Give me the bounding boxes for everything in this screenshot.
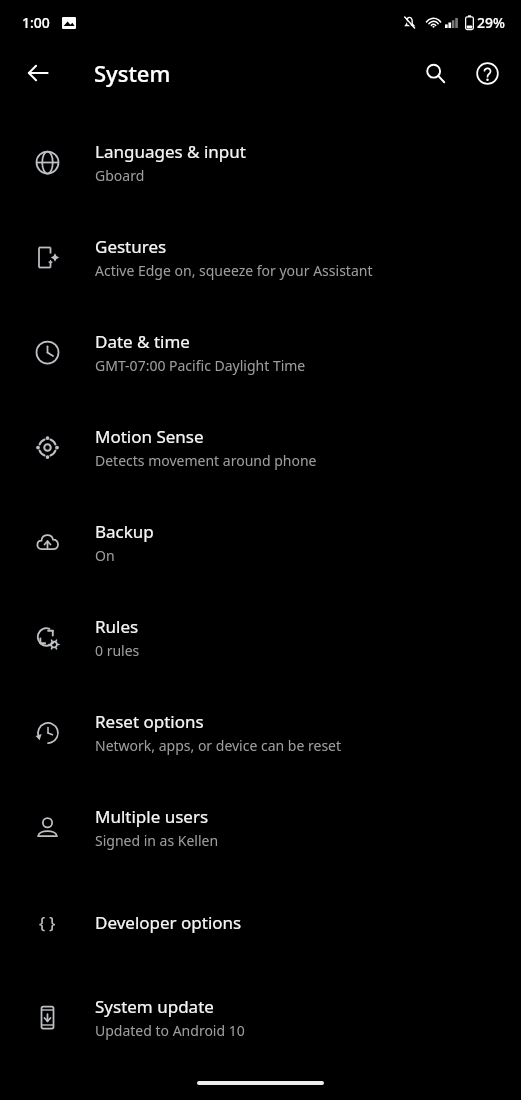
button[interactable]: Date & time: [0, 305, 521, 400]
staticText: Signed in as Kellen: [95, 831, 219, 850]
button[interactable]: Back: [10, 45, 66, 101]
staticText: System update: [95, 995, 214, 1018]
button[interactable]: Search: [409, 47, 461, 99]
staticText: On: [95, 546, 115, 565]
staticText: Updated to Android 10: [95, 1021, 245, 1040]
button[interactable]: { }: [0, 875, 521, 970]
staticText: Multiple users: [95, 805, 209, 828]
button[interactable]: Rules: [0, 590, 521, 685]
staticText: Developer options: [95, 911, 242, 934]
staticText: Gestures: [95, 235, 167, 258]
button[interactable]: Help: [461, 47, 513, 99]
staticText: 29%: [477, 13, 505, 32]
button[interactable]: Languages & input: [0, 115, 521, 210]
staticText: Gboard: [95, 166, 145, 185]
staticText: 1:00: [22, 13, 50, 32]
staticText: Network, apps, or device can be reset: [95, 736, 342, 755]
staticText: Date & time: [95, 330, 190, 353]
staticText: Motion Sense: [95, 425, 204, 448]
staticText: Backup: [95, 520, 154, 543]
staticText: { }: [39, 912, 56, 934]
button[interactable]: Multiple users: [0, 780, 521, 875]
button[interactable]: Backup: [0, 495, 521, 590]
staticText: GMT-07:00 Pacific Daylight Time: [95, 356, 306, 375]
button[interactable]: Reset options: [0, 685, 521, 780]
button[interactable]: Motion Sense: [0, 400, 521, 495]
staticText: Rules: [95, 615, 139, 638]
button[interactable]: System update: [0, 970, 521, 1065]
staticText: Detects movement around phone: [95, 451, 317, 470]
staticText: System: [94, 58, 171, 88]
button[interactable]: Gestures: [0, 210, 521, 305]
staticText: 0 rules: [95, 641, 140, 660]
staticText: Active Edge on, squeeze for your Assista…: [95, 261, 373, 280]
staticText: Languages & input: [95, 140, 246, 163]
staticText: Reset options: [95, 710, 204, 733]
